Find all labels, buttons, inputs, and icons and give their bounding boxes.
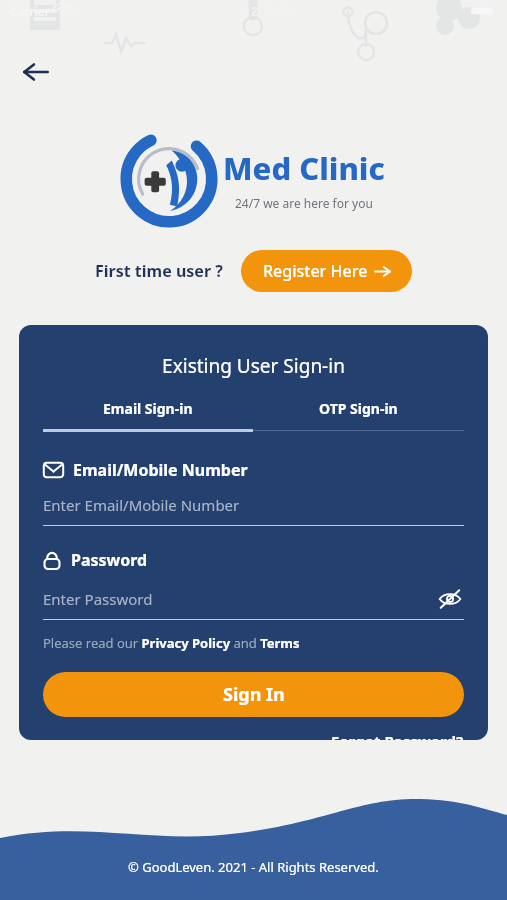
staticText: 12:37 PM [244, 3, 297, 19]
button[interactable]: Enter Email/Mobile Number [43, 495, 464, 515]
button[interactable]: Enter Password [43, 589, 436, 609]
staticText: Enter Email/Mobile Number [43, 495, 240, 515]
button[interactable]: Show password [436, 585, 464, 613]
staticText: 24/7 we are here for you [235, 195, 373, 211]
staticText: OTP Sign-in [319, 399, 398, 418]
button[interactable]: Please read our Privacy Policy and Terms [43, 634, 300, 652]
staticText: First time user ? [95, 260, 223, 282]
staticText: Email/Mobile Number [73, 459, 248, 481]
staticText: Enter Password [43, 589, 153, 609]
staticText: Register Here [263, 260, 368, 282]
staticText: Password [71, 549, 148, 571]
staticText: © GoodLeven. 2021 - All Rights Reserved. [128, 858, 379, 876]
button[interactable]: Sign In [43, 672, 464, 717]
staticText: Existing User Sign-in [19, 353, 488, 379]
staticText: Email Sign-in [103, 399, 193, 418]
button[interactable]: Back [14, 50, 58, 94]
button[interactable]: OTP Sign-in [253, 399, 464, 431]
staticText: Carrier [10, 3, 50, 19]
button[interactable]: Register Here [241, 250, 412, 292]
button[interactable]: Email Sign-in [43, 399, 253, 432]
staticText: Sign In [223, 682, 285, 707]
button[interactable]: Forgot Password? [331, 731, 464, 740]
staticText: Med Clinic [223, 147, 385, 189]
